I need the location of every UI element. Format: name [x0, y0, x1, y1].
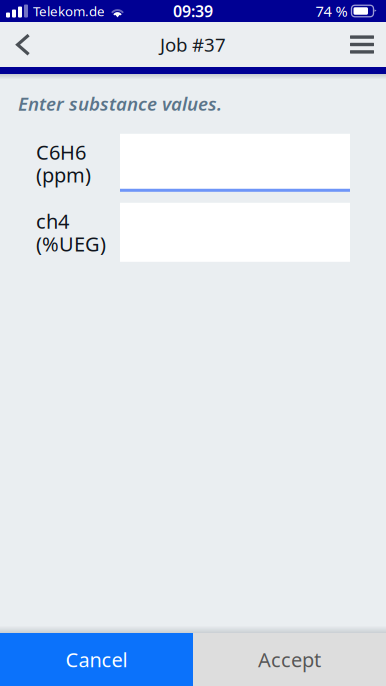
- staticText: 74 %: [315, 1, 347, 21]
- staticText: 09:39: [173, 0, 213, 22]
- staticText: (%UEG): [36, 230, 106, 257]
- staticText: Accept: [258, 646, 321, 673]
- button[interactable]: Back: [3, 22, 43, 66]
- button[interactable]: Cancel: [0, 633, 193, 686]
- button[interactable]: Accept: [193, 633, 386, 686]
- staticText: Cancel: [65, 646, 127, 673]
- staticText: Telekom.de: [33, 2, 105, 20]
- button[interactable]: Menu: [340, 22, 384, 66]
- button[interactable]: C6H6 (ppm) value: [120, 134, 350, 193]
- staticText: (ppm): [36, 161, 91, 188]
- staticText: C6H6: [36, 139, 86, 165]
- staticText: Job #37: [160, 32, 226, 57]
- staticText: ch4: [36, 208, 69, 234]
- staticText: Enter substance values.: [18, 91, 222, 116]
